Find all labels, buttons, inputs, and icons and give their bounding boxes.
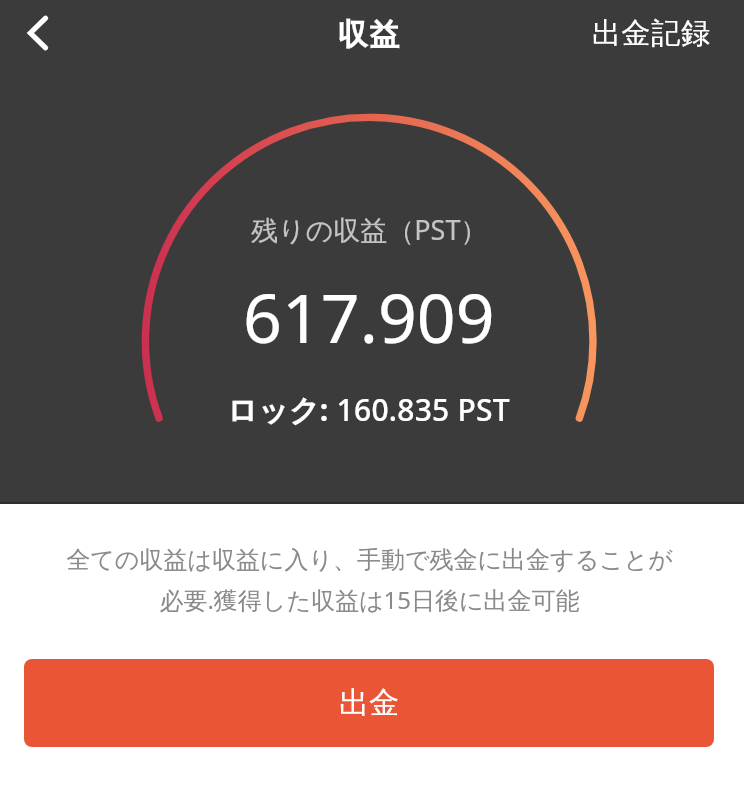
staticText: 全ての収益は収益に入り、手動で残金に出金することが: [66, 545, 673, 575]
staticText: 出金: [339, 684, 399, 722]
button[interactable]: 出金: [24, 659, 714, 747]
staticText: 出金記録: [592, 15, 711, 52]
button[interactable]: 出金記録: [557, 5, 744, 62]
staticText: 収益: [337, 16, 400, 54]
staticText: ロック: 160.835 PST: [227, 389, 510, 430]
staticText: 必要.獲得した収益は15日後に出金可能: [159, 583, 580, 616]
button[interactable]: Back: [10, 5, 66, 61]
staticText: 617.909: [243, 270, 495, 363]
staticText: 残りの収益（PST）: [251, 211, 488, 248]
